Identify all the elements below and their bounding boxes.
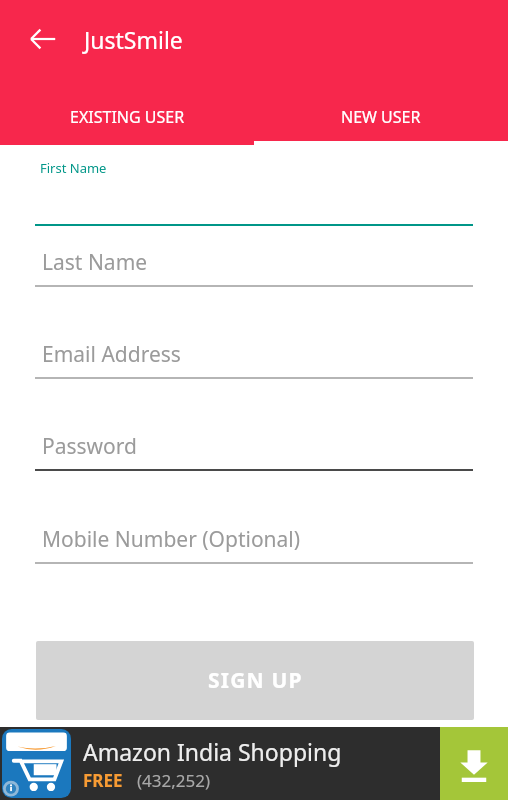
staticText: First Name: [40, 159, 107, 177]
staticText: Mobile Number (Optional): [42, 525, 301, 554]
staticText: Email Address: [42, 340, 181, 369]
button[interactable]: Email Address: [35, 333, 473, 379]
button[interactable]: Last Name: [35, 241, 473, 287]
button[interactable]: SIGN UP: [36, 641, 474, 720]
button[interactable]: Password: [35, 425, 473, 471]
staticText: Amazon India Shopping: [83, 736, 342, 767]
button[interactable]: Amazon India Shopping: [83, 727, 436, 800]
button[interactable]: Back: [20, 16, 66, 62]
staticText: Password: [42, 432, 137, 461]
button[interactable]: Amazon India Shopping app icon: [2, 729, 71, 798]
staticText: Last Name: [42, 248, 148, 277]
staticText: (432,252): [137, 769, 211, 792]
staticText: FREE: [83, 769, 123, 792]
button[interactable]: NEW USER: [254, 93, 508, 141]
staticText: NEW USER: [341, 106, 421, 128]
button[interactable]: Mobile Number (Optional): [35, 518, 473, 564]
button[interactable]: Install: [440, 727, 508, 800]
button[interactable]: EXISTING USER: [0, 93, 254, 141]
staticText: SIGN UP: [208, 666, 303, 695]
staticText: JustSmile: [84, 24, 183, 55]
button[interactable]: [35, 150, 473, 226]
staticText: EXISTING USER: [70, 106, 185, 128]
